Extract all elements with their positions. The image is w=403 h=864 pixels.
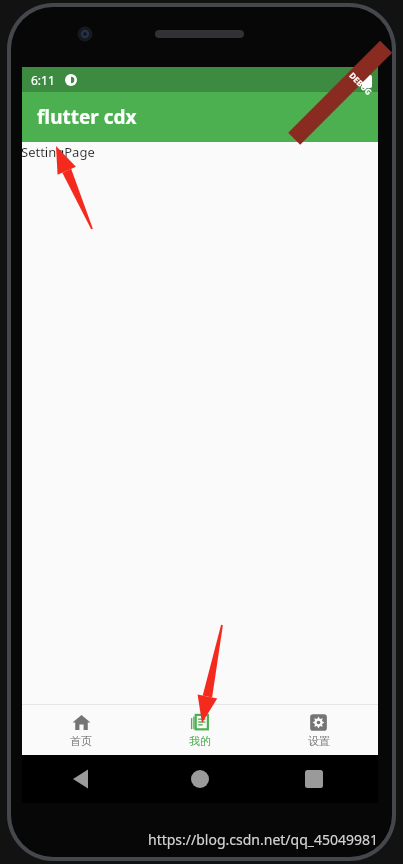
staticText: 首页 [70,734,92,748]
staticText: 我的 [189,734,211,748]
other: 首页 [72,713,91,732]
staticText: flutter cdx [37,104,137,130]
other: 设置 [309,713,328,732]
staticText: https://blog.csdn.net/qq_45049981 [148,830,379,849]
button[interactable]: 首页 [22,705,140,755]
button[interactable]: 设置 [259,705,378,755]
staticText: SettingPage [21,143,95,161]
staticText: DEBUG [347,70,375,97]
other: 我的 [190,713,209,732]
button[interactable]: 我的 [140,705,259,755]
staticText: 6:11 [31,72,55,88]
staticText: 设置 [308,734,330,748]
